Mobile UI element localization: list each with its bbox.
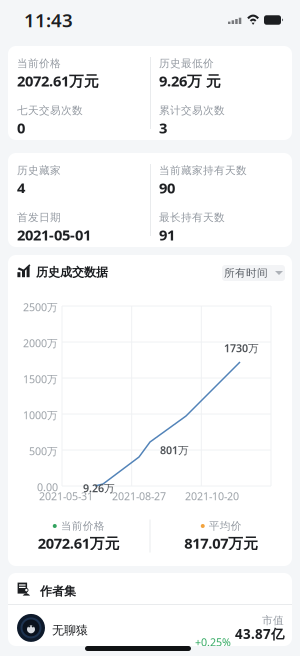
staticText: 2021-10-20 (185, 489, 239, 503)
staticText: 历史藏家 (17, 164, 61, 177)
button[interactable]: 所有时间 (222, 265, 285, 281)
staticText: 2000万 (23, 336, 58, 350)
staticText: 七天交易次数 (17, 104, 83, 117)
staticText: 2072.61万元 (38, 533, 120, 553)
staticText: +0.25% (195, 635, 231, 649)
staticText: 817.07万元 (184, 533, 258, 553)
staticText: 2021-08-27 (112, 489, 166, 503)
staticText: 历史成交数据 (36, 265, 108, 280)
staticText: 1500万 (23, 372, 58, 386)
button[interactable]: 无聊猿 (8, 605, 292, 646)
staticText: 2021-05-31 (39, 489, 93, 503)
staticText: 2021-05-01 (17, 225, 91, 244)
button[interactable]: 作者集 (8, 573, 292, 604)
staticText: 所有时间 (224, 266, 268, 279)
staticText: 无聊猿 (52, 623, 88, 638)
staticText: 1730万 (224, 341, 259, 355)
staticText: 累计交易次数 (159, 104, 225, 117)
staticText: 市值 (262, 614, 284, 627)
staticText: 历史最低价 (159, 57, 214, 70)
staticText: 500万 (29, 444, 58, 458)
staticText: 2072.61万元 (17, 71, 99, 90)
staticText: 当前藏家持有天数 (159, 164, 247, 177)
staticText: 平均价 (209, 519, 242, 532)
staticText: 2500万 (23, 300, 58, 314)
staticText: 0.00 (37, 480, 58, 494)
staticText: 91 (159, 225, 175, 244)
staticText: 首发日期 (17, 211, 61, 224)
staticText: 9.26万 元 (159, 71, 221, 90)
staticText: 1000万 (23, 408, 58, 422)
staticText: 4 (17, 178, 25, 197)
staticText: 11:43 (24, 8, 73, 32)
staticText: 9.26万 (83, 481, 115, 495)
staticText: 90 (159, 178, 175, 197)
staticText: 43.87亿 (235, 625, 284, 643)
staticText: 当前价格 (17, 57, 61, 70)
staticText: 作者集 (40, 584, 76, 599)
staticText: 801万 (160, 443, 189, 457)
staticText: 当前价格 (61, 519, 105, 532)
staticText: 最长持有天数 (159, 211, 225, 224)
staticText: 3 (159, 118, 167, 137)
staticText: 0 (17, 118, 25, 137)
